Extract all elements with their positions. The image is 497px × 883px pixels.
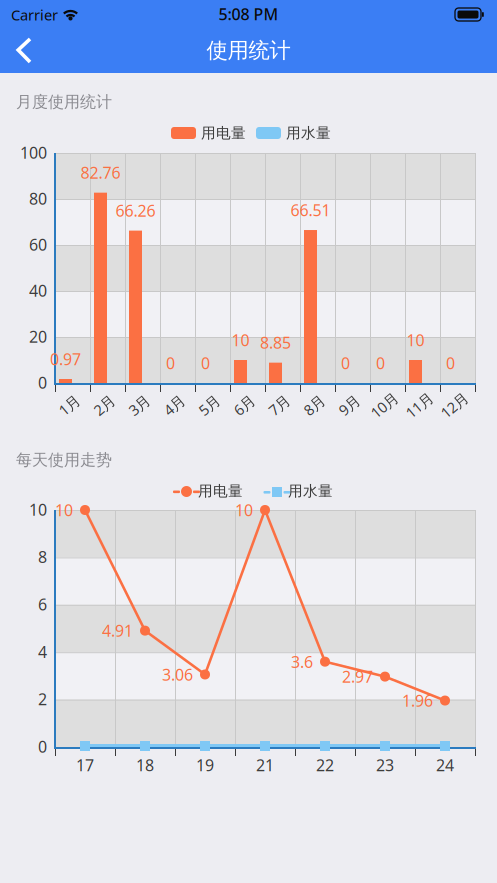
staticText: 10	[406, 329, 424, 351]
staticText: 66.51	[290, 199, 330, 221]
staticText: 10	[235, 499, 253, 521]
staticText: 9月	[338, 395, 361, 415]
staticText: 3.6	[291, 651, 313, 672]
staticText: 使用统计	[206, 37, 290, 64]
staticText: 2	[38, 688, 47, 710]
staticText: 3月	[128, 395, 151, 415]
staticText: 8	[38, 546, 47, 567]
staticText: 10	[29, 499, 47, 520]
staticText: 4.91	[102, 620, 133, 641]
staticText: 17	[76, 754, 94, 776]
staticText: 4	[38, 641, 47, 662]
staticText: 3.06	[162, 664, 193, 685]
staticText: 5月	[198, 395, 221, 415]
staticText: 80	[29, 188, 47, 209]
staticText: 40	[29, 280, 47, 301]
staticText: 20	[29, 326, 47, 347]
staticText: 每天使用走势	[16, 450, 112, 470]
staticText: 5:08 PM	[218, 3, 278, 25]
staticText: 12月	[439, 395, 470, 415]
staticText: 4月	[163, 395, 186, 415]
staticText: 10	[55, 499, 73, 521]
staticText: 60	[29, 234, 47, 255]
staticText: 0	[376, 352, 385, 374]
staticText: 82.76	[80, 162, 120, 183]
staticText: 2月	[93, 395, 116, 415]
staticText: 6	[38, 594, 47, 615]
staticText: 24	[436, 754, 454, 776]
staticText: 0	[446, 352, 455, 374]
staticText: 21	[256, 754, 274, 776]
staticText: 6月	[233, 395, 256, 415]
staticText: 11月	[404, 395, 435, 415]
staticText: 1.96	[402, 690, 433, 711]
staticText: 0.97	[50, 348, 81, 370]
staticText: 100	[20, 142, 47, 163]
staticText: 8月	[303, 395, 326, 415]
staticText: 月度使用统计	[16, 92, 112, 112]
staticText: 7月	[268, 395, 291, 415]
staticText: 用电量	[198, 482, 243, 500]
staticText: 2.97	[342, 666, 373, 687]
staticText: 0	[341, 352, 350, 374]
staticText: 用水量	[286, 124, 331, 142]
staticText: 8.85	[260, 332, 291, 353]
staticText: 66.26	[115, 200, 155, 221]
staticText: 18	[136, 754, 154, 776]
staticText: 22	[316, 754, 334, 776]
button[interactable]: Back	[4, 28, 46, 73]
staticText: 19	[196, 754, 214, 776]
staticText: 0	[38, 372, 47, 393]
staticText: Carrier	[11, 5, 58, 24]
staticText: 23	[376, 754, 394, 776]
staticText: 0	[201, 352, 210, 374]
staticText: 0	[38, 736, 47, 757]
staticText: 0	[166, 352, 175, 374]
staticText: 10	[231, 329, 249, 351]
staticText: 用水量	[288, 482, 333, 500]
staticText: 用电量	[201, 124, 246, 142]
staticText: 1月	[58, 395, 81, 415]
staticText: 10月	[369, 395, 400, 415]
